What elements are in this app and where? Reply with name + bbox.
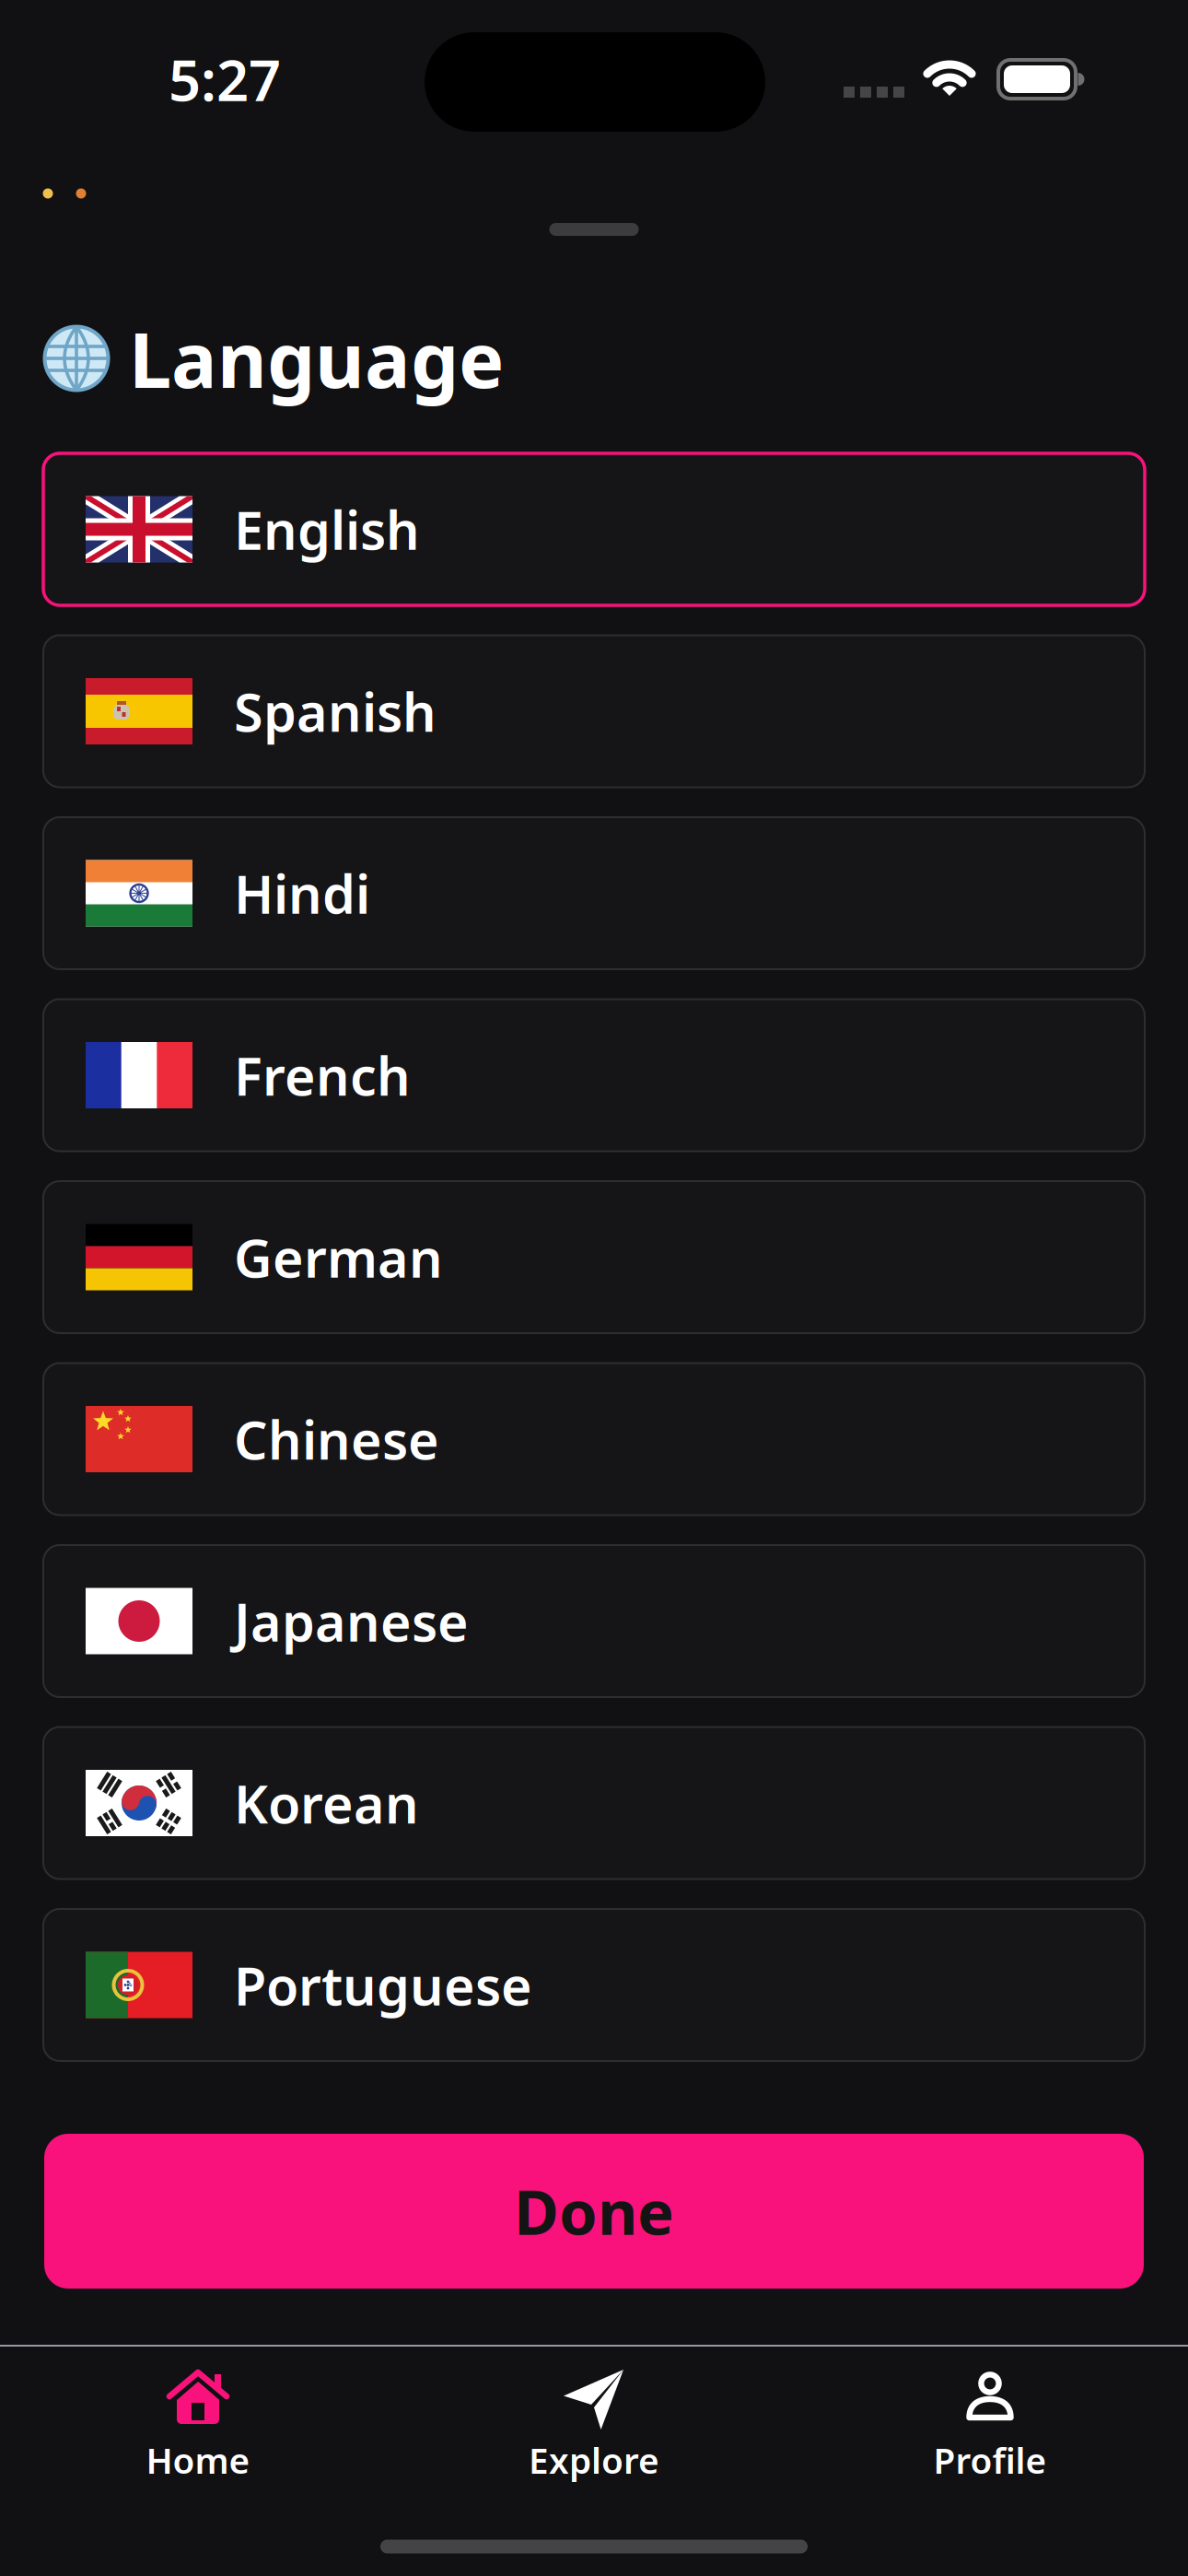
button[interactable]: Chinese [43,1363,1145,1515]
staticText: Language [129,308,504,409]
staticText: Done [514,2170,674,2252]
button[interactable]: Japanese [43,1545,1145,1697]
staticText: English [234,494,420,564]
button[interactable]: Home [23,2326,373,2525]
staticText: Profile [933,2436,1047,2483]
button[interactable]: German [43,1181,1145,1333]
staticText: Explore [529,2436,659,2483]
staticText: Portuguese [234,1950,532,2020]
button[interactable]: Explore [419,2326,769,2525]
button[interactable]: Done [44,2134,1144,2289]
button[interactable]: Hindi [43,817,1145,969]
staticText: German [234,1222,443,1292]
staticText: Japanese [234,1586,469,1656]
staticText: Spanish [234,676,437,746]
button[interactable]: Spanish [43,635,1145,787]
staticText: 5:27 [169,42,281,117]
staticText: Korean [234,1768,419,1838]
staticText: French [234,1040,411,1110]
button[interactable]: Profile [815,2326,1165,2525]
staticText: Hindi [234,858,370,928]
button[interactable]: English [43,453,1145,605]
button[interactable]: Portuguese [43,1909,1145,2061]
staticText: Chinese [234,1404,439,1474]
staticText: Home [146,2436,250,2483]
button[interactable]: French [43,999,1145,1151]
button[interactable]: Korean [43,1727,1145,1879]
